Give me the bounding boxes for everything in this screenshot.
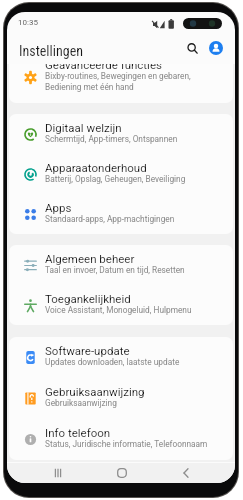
staticText: Taal en invoer, Datum en tijd, Resetten [45, 265, 185, 275]
staticText: Schermtijd, App-timers, Ontspannen [45, 134, 178, 144]
staticText: Toegankelijkheid [45, 292, 131, 305]
button[interactable]: Software-update [9, 337, 233, 378]
staticText: Gebruiksaanwijzing [45, 385, 145, 398]
button[interactable]: Digitaal welzijn [9, 114, 233, 154]
button[interactable]: Search [181, 37, 203, 59]
staticText: Batterij, Opslag, Geheugen, Beveiliging [45, 174, 186, 184]
button[interactable]: Apparaatonderhoud [9, 154, 233, 194]
button[interactable]: Home [109, 464, 135, 482]
button[interactable]: Toegankelijkheid [9, 285, 233, 325]
staticText: Bixby-routines, Bewegingen en gebaren, [45, 71, 191, 81]
staticText: Geavanceerde functies [45, 64, 162, 71]
button[interactable]: Algemeen beheer [9, 245, 233, 285]
staticText: Status, Juridische informatie, Telefoonn… [45, 439, 208, 449]
staticText: 10:35 [18, 18, 38, 27]
staticText: Voice Assistant, Monogeluid, Hulpmenu [45, 305, 192, 315]
button[interactable]: Geavanceerde functies [9, 64, 233, 90]
staticText: Gebruiksaanwijzing [45, 398, 117, 408]
button[interactable]: Info telefoon [9, 419, 233, 460]
staticText: Digitaal welzijn [45, 121, 122, 134]
staticText: Software-update [45, 344, 130, 357]
staticText: Bediening met één hand [45, 82, 134, 92]
staticText: Info telefoon [45, 426, 111, 439]
button[interactable]: Recent apps [45, 464, 71, 482]
staticText: Algemeen beheer [45, 252, 135, 265]
staticText: Standaard-apps, App-machtigingen [45, 214, 175, 224]
button[interactable]: Apps [9, 194, 233, 234]
button[interactable]: Gebruiksaanwijzing [9, 378, 233, 419]
staticText: Updates downloaden, laatste update [45, 357, 180, 367]
button[interactable]: Account [205, 37, 227, 59]
staticText: Apps [45, 201, 72, 214]
staticText: Instellingen [19, 43, 84, 59]
staticText: Apparaatonderhoud [45, 161, 147, 174]
button[interactable]: Back [173, 464, 199, 482]
